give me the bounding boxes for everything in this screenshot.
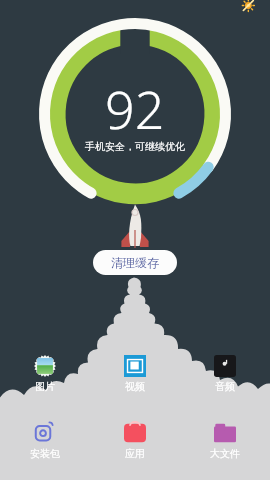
staticText: 图片 <box>35 380 55 393</box>
button[interactable]: 大文件 <box>180 419 270 480</box>
button[interactable]: 应用 <box>90 419 180 480</box>
staticText: 手机安全，可继续优化 <box>0 140 270 153</box>
staticText: 安装包 <box>30 447 60 460</box>
button[interactable]: 音频 <box>180 352 270 419</box>
staticText: 清理缓存 <box>111 255 159 270</box>
staticText: 大文件 <box>210 447 240 460</box>
button[interactable]: 清理缓存 <box>93 250 177 275</box>
button[interactable]: 安装包 <box>0 419 90 480</box>
button[interactable]: Brightness <box>238 0 260 22</box>
button[interactable]: 图片 <box>0 352 90 419</box>
button[interactable]: 视频 <box>90 352 180 419</box>
staticText: 92 <box>105 73 165 144</box>
staticText: 应用 <box>125 447 145 460</box>
staticText: 视频 <box>125 380 145 393</box>
staticText: 音频 <box>215 380 235 393</box>
